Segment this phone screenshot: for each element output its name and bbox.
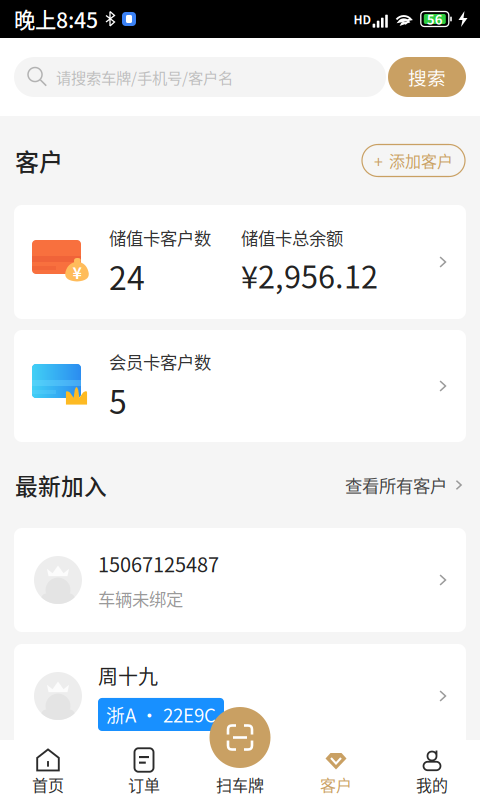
staticText: 晚上8:45 [14, 4, 98, 34]
button[interactable]: 会员卡客户数 [14, 330, 466, 442]
staticText: 客户 [15, 143, 63, 178]
button[interactable]: 查看所有客户 [345, 472, 465, 498]
button[interactable]: + [362, 144, 465, 176]
staticText: 浙A · 22E9C [106, 701, 216, 728]
staticText: 扫车牌 [216, 773, 264, 796]
button[interactable]: ¥ [14, 205, 466, 319]
staticText: 最新加入 [15, 469, 107, 501]
staticText: 会员卡客户数 [109, 349, 211, 374]
staticText: 15067125487 [98, 549, 219, 578]
staticText: 搜索 [408, 63, 446, 90]
staticText: 储值卡总余额 [241, 225, 343, 250]
staticText: 订单 [128, 773, 160, 796]
button[interactable]: 客户 [288, 740, 384, 800]
button[interactable]: 搜索 [388, 57, 466, 97]
staticText: 请搜索车牌/手机号/客户名 [56, 66, 233, 88]
staticText: 5 [109, 377, 127, 423]
button[interactable]: 扫车牌 [192, 740, 288, 800]
staticText: 查看所有客户 [345, 472, 447, 498]
staticText: 车辆未绑定 [98, 586, 183, 611]
staticText: ¥2,956.12 [241, 253, 378, 297]
staticText: HD [354, 10, 372, 28]
staticText: 周十九 [98, 661, 158, 690]
staticText: 添加客户 [389, 149, 453, 172]
button[interactable]: 15067125487 [14, 528, 466, 632]
staticText: 储值卡客户数 [109, 225, 211, 250]
button[interactable]: 订单 [96, 740, 192, 800]
staticText: 我的 [416, 773, 448, 796]
button[interactable]: 首页 [0, 740, 96, 800]
button[interactable]: 周十九 [14, 644, 466, 748]
staticText: ¥ [72, 260, 81, 284]
staticText: 客户 [320, 773, 352, 796]
button[interactable]: 扫车牌 [209, 707, 270, 768]
staticText: 首页 [32, 773, 64, 796]
staticText: 56 [427, 9, 443, 29]
staticText: + [374, 149, 383, 172]
button[interactable]: 我的 [384, 740, 480, 800]
staticText: 24 [109, 253, 145, 299]
